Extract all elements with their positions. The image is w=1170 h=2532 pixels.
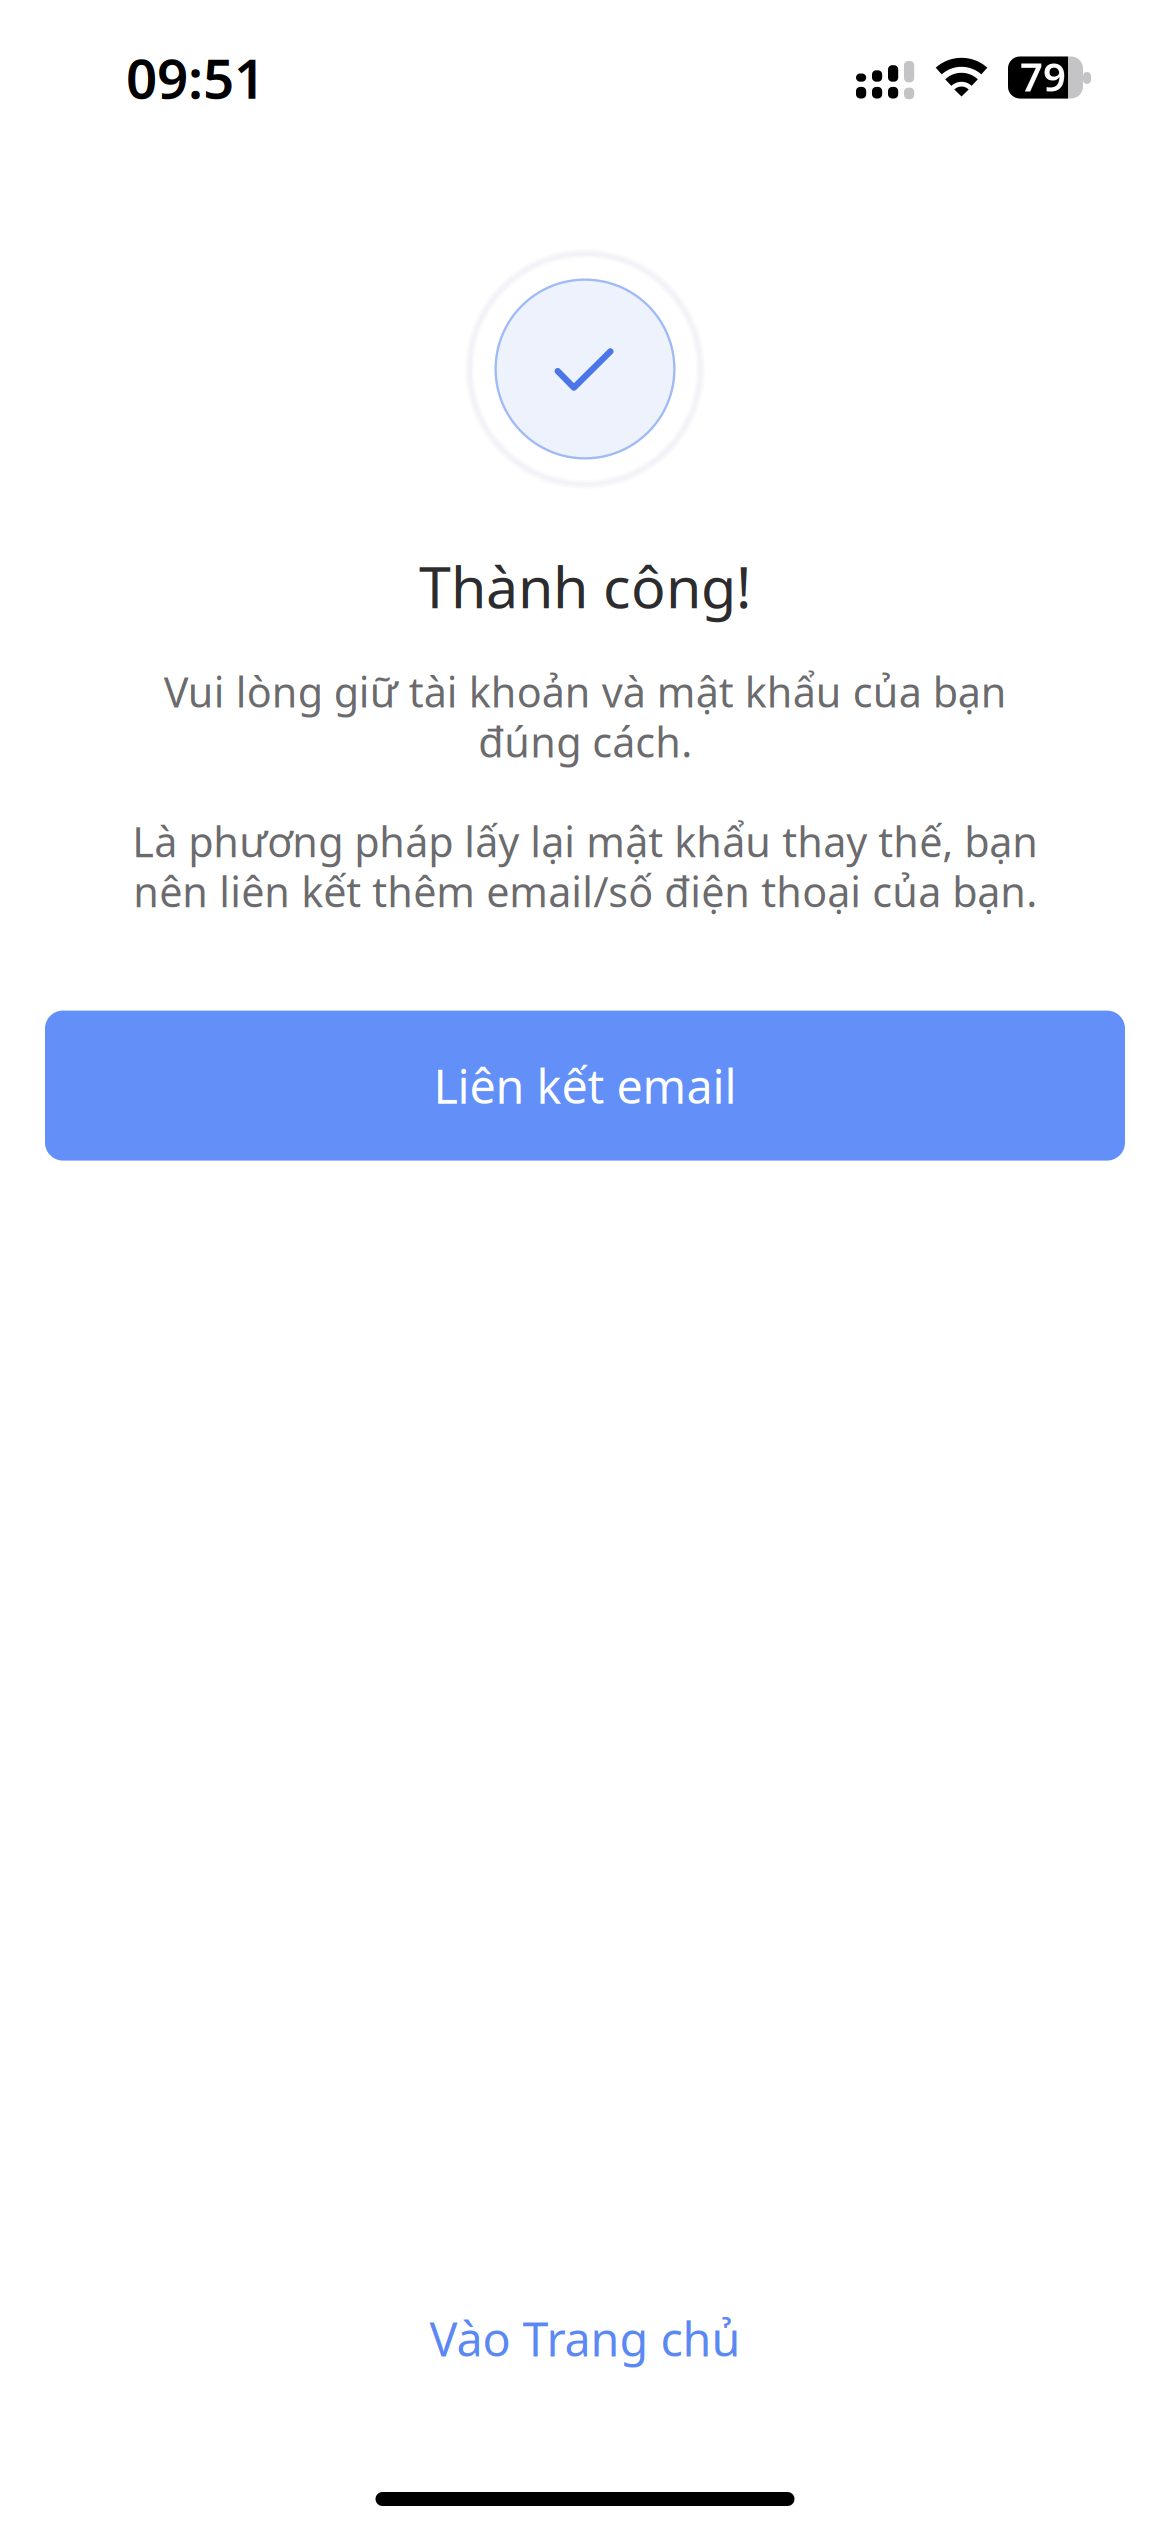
staticText: 09:51 [126,41,265,114]
staticText: Vui lòng giữ tài khoản và mật khẩu của b… [132,664,1038,918]
staticText: Thành công! [419,548,751,624]
staticText: 79 [1020,49,1066,102]
staticText: Vào Trang chủ [429,2307,740,2369]
button[interactable]: Liên kết email [45,1011,1125,1161]
staticText: Liên kết email [433,1055,736,1117]
button[interactable]: Vào Trang chủ [369,2307,800,2370]
